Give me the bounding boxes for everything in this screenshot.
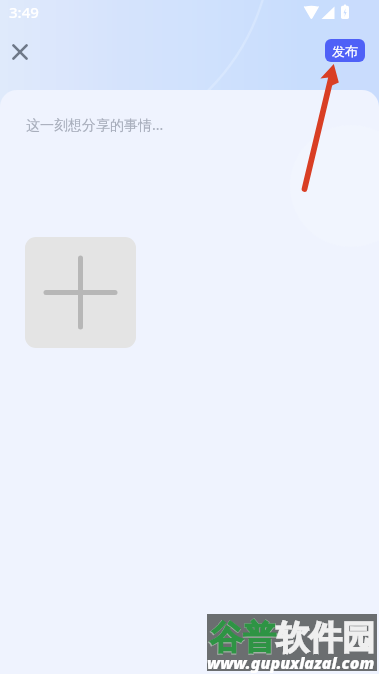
staticText: www.gupuxlazal.com xyxy=(207,652,375,674)
button[interactable]: 发布 xyxy=(325,39,365,62)
button[interactable]: Close xyxy=(6,38,34,66)
staticText: 发布 xyxy=(332,43,358,59)
button[interactable]: Add photo xyxy=(25,237,136,348)
staticText: 这一刻想分享的事情... xyxy=(26,115,164,134)
staticText: 谷普 xyxy=(210,617,276,659)
staticText: 谷普 xyxy=(209,617,277,660)
staticText: 软件园 xyxy=(276,617,375,659)
staticText: 3:49 xyxy=(9,2,39,22)
